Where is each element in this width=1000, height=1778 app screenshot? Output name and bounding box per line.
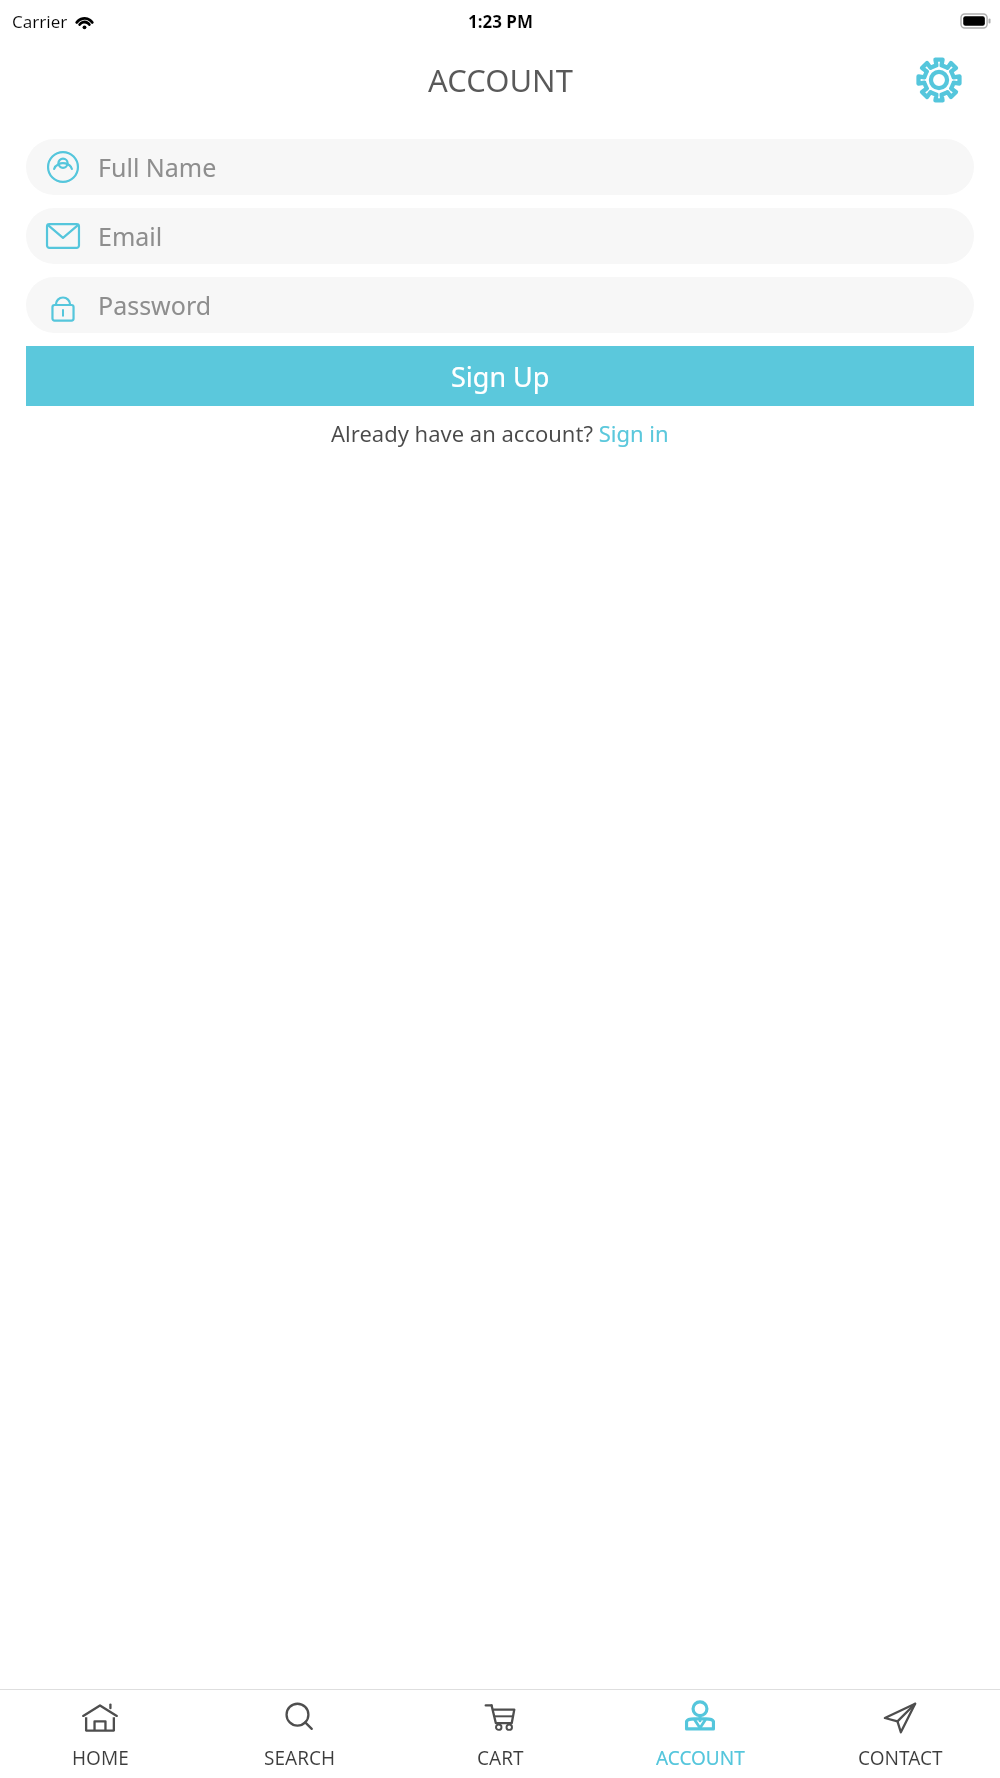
button[interactable]: Already have an account? Sign in	[331, 418, 669, 448]
staticText: Already have an account? Sign in	[331, 418, 669, 448]
staticText: Sign Up	[451, 358, 550, 395]
staticText: Full Name	[98, 150, 217, 184]
staticText: CART	[477, 1745, 524, 1771]
staticText: ACCOUNT	[428, 59, 573, 101]
button[interactable]: Full Name	[26, 139, 974, 195]
staticText: Password	[98, 288, 212, 322]
staticText: Email	[98, 219, 163, 253]
staticText: SEARCH	[264, 1745, 336, 1771]
staticText: HOME	[72, 1745, 129, 1771]
staticText: 1:23 PM	[468, 10, 533, 33]
button[interactable]: Email	[26, 208, 974, 264]
button[interactable]: Password	[26, 277, 974, 333]
button[interactable]: Settings	[910, 51, 968, 109]
button[interactable]: Sign Up	[26, 346, 974, 406]
button[interactable]: CONTACT	[800, 1690, 1000, 1778]
staticText: CONTACT	[858, 1745, 943, 1771]
staticText: ACCOUNT	[656, 1745, 745, 1771]
button[interactable]: HOME	[0, 1690, 200, 1778]
staticText: Carrier	[12, 10, 68, 33]
button[interactable]: CART	[400, 1690, 600, 1778]
button[interactable]: ACCOUNT	[600, 1690, 800, 1778]
button[interactable]: SEARCH	[200, 1690, 400, 1778]
